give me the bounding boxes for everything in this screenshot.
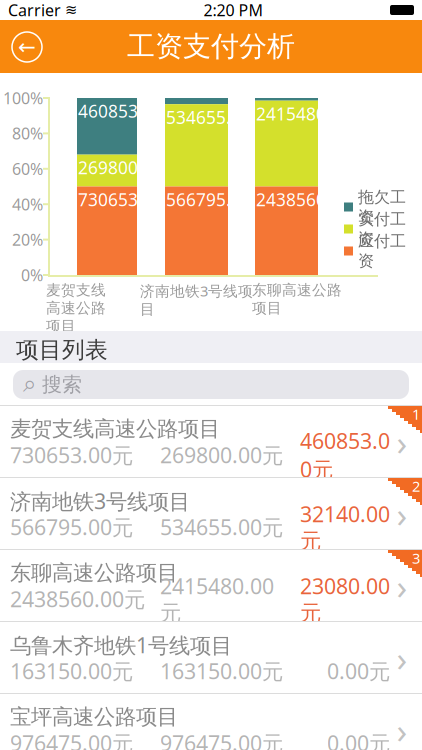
staticText: 32140.00元 — [300, 500, 390, 554]
button[interactable]: 济南地铁3号线项目 — [0, 478, 422, 549]
staticText: 东聊高速公路项目 — [10, 560, 178, 586]
staticText: ≋ — [65, 2, 77, 18]
staticText: 0.00元 — [327, 657, 390, 685]
button[interactable]: 东聊高速公路项目 — [0, 550, 422, 621]
staticText: 163150.00元 — [10, 657, 133, 685]
staticText: 搜索 — [42, 372, 82, 397]
staticText: 2 — [412, 476, 420, 496]
staticText: 976475.00元 — [160, 729, 283, 750]
staticText: 2415480.00元 — [160, 572, 274, 626]
staticText: 566795.00 — [166, 188, 251, 211]
staticText: 80% — [12, 123, 43, 144]
staticText: 0% — [21, 264, 43, 286]
staticText: 3 — [412, 548, 420, 568]
staticText: 534655.00元 — [160, 513, 283, 541]
staticText: › — [396, 563, 407, 609]
staticText: ⌕ — [23, 373, 36, 396]
staticText: 拖欠工资 — [358, 187, 406, 227]
staticText: 宝坪高速公路项目 — [10, 704, 178, 730]
staticText: 0.00元 — [327, 729, 390, 750]
staticText: 460853.00元 — [300, 427, 390, 483]
staticText: 40% — [12, 194, 43, 215]
staticText: › — [396, 635, 407, 681]
staticText: 269800.00元 — [160, 441, 283, 469]
staticText: 730653.00元 — [10, 441, 133, 469]
button[interactable]: Back — [5, 25, 49, 69]
staticText: 2438560.00 — [256, 188, 351, 211]
staticText: 730653.00 — [78, 188, 163, 211]
staticText: 1 — [412, 404, 420, 424]
staticText: 23080.00元 — [300, 572, 390, 626]
staticText: 163150.00元 — [160, 657, 283, 685]
staticText: 269800.00 — [78, 156, 163, 179]
staticText: Carrier — [8, 0, 61, 21]
staticText: 济南地铁3号线项目 — [10, 487, 190, 515]
staticText: 60% — [12, 158, 43, 179]
staticText: 济南地铁3号线项目 — [140, 281, 253, 318]
staticText: 100% — [3, 87, 43, 109]
staticText: 976475.00元 — [10, 729, 133, 750]
staticText: 项目列表 — [16, 336, 108, 364]
staticText: 应付工资 — [358, 231, 406, 271]
staticText: › — [396, 419, 407, 465]
staticText: 东聊高速公路项目 — [252, 281, 342, 317]
staticText: 实付工资 — [358, 209, 406, 249]
staticText: 2415480.00 — [256, 102, 351, 125]
button[interactable]: 麦贺支线高速公路项目 — [0, 406, 422, 477]
button[interactable]: 宝坪高速公路项目 — [0, 694, 422, 750]
staticText: 534655.00 — [166, 106, 251, 129]
staticText: 麦贺支线高速公路项目 — [10, 416, 220, 442]
staticText: 2438560.00元 — [10, 585, 145, 613]
staticText: 20% — [12, 229, 43, 250]
staticText: 麦贺支线高速公路项目 — [46, 281, 106, 335]
button[interactable]: 乌鲁木齐地铁1号线项目 — [0, 622, 422, 693]
staticText: 566795.00元 — [10, 513, 133, 541]
staticText: 工资支付分析 — [127, 29, 295, 64]
staticText: › — [396, 707, 407, 750]
staticText: 乌鲁木齐地铁1号线项目 — [10, 631, 232, 659]
staticText: 2:20 PM — [203, 0, 263, 21]
staticText: › — [396, 491, 407, 537]
staticText: 460853.00 — [78, 99, 163, 122]
staticText: ← — [18, 35, 36, 59]
